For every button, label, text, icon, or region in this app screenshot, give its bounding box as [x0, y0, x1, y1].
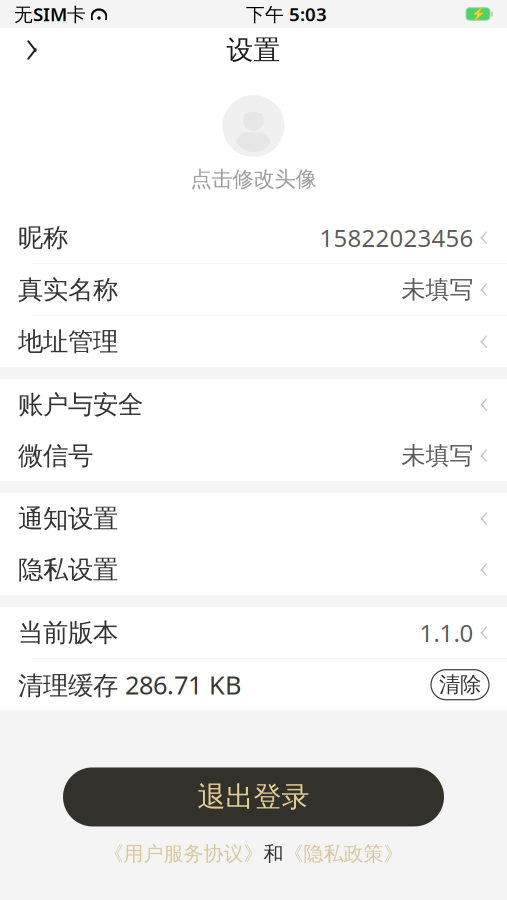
- staticText: 未填写: [401, 275, 473, 304]
- button[interactable]: 隐私设置: [0, 544, 507, 595]
- staticText: 未填写: [401, 441, 473, 470]
- button[interactable]: 《用户服务协议》: [103, 841, 263, 866]
- button[interactable]: 清除: [431, 670, 489, 700]
- button[interactable]: 返回: [8, 28, 56, 72]
- button[interactable]: 昵称: [0, 212, 507, 263]
- staticText: 和: [263, 841, 283, 866]
- button[interactable]: 微信号: [0, 430, 507, 481]
- button[interactable]: 当前版本: [0, 607, 507, 658]
- staticText: 《用户服务协议》: [103, 841, 263, 866]
- button[interactable]: 退出登录: [63, 767, 444, 826]
- button[interactable]: 通知设置: [0, 493, 507, 544]
- button[interactable]: 修改头像: [222, 95, 284, 157]
- staticText: 通知设置: [18, 503, 118, 534]
- button[interactable]: 《隐私政策》: [283, 841, 403, 866]
- staticText: 清除: [439, 672, 481, 698]
- staticText: 清理缓存 286.71 KB: [18, 668, 241, 701]
- staticText: 真实名称: [18, 274, 118, 305]
- staticText: 退出登录: [197, 780, 309, 814]
- button[interactable]: 账户与安全: [0, 379, 507, 430]
- staticText: 昵称: [18, 222, 68, 253]
- staticText: 微信号: [18, 440, 93, 471]
- staticText: 账户与安全: [18, 389, 143, 420]
- staticText: 1.1.0: [419, 617, 473, 649]
- staticText: 点击修改头像: [190, 166, 316, 192]
- button[interactable]: 真实名称: [0, 264, 507, 315]
- staticText: 设置: [226, 34, 280, 66]
- staticText: 《隐私政策》: [283, 841, 403, 866]
- staticText: 15822023456: [319, 222, 473, 254]
- staticText: 地址管理: [18, 326, 118, 357]
- staticText: 下午 5:03: [246, 2, 327, 26]
- button[interactable]: 地址管理: [0, 316, 507, 367]
- staticText: 隐私设置: [18, 554, 118, 585]
- staticText: ⚡: [470, 7, 485, 21]
- staticText: 当前版本: [18, 617, 118, 648]
- staticText: 无SIM卡: [14, 2, 86, 26]
